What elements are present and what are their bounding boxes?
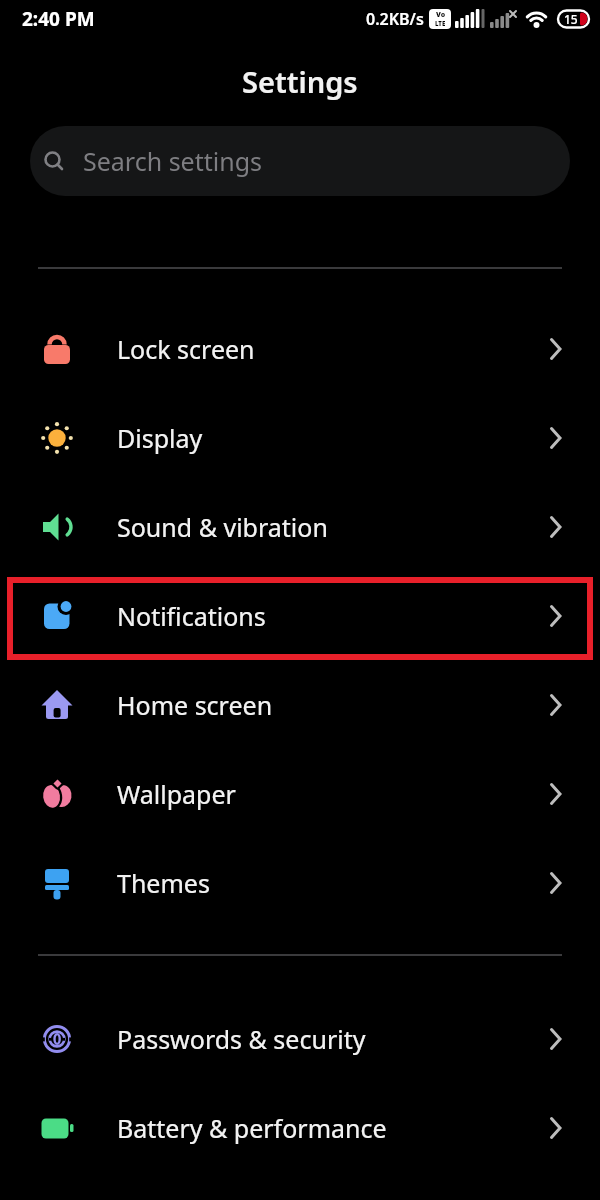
button[interactable]: Notifications — [0, 571, 600, 660]
button[interactable]: Lock screen — [0, 304, 600, 393]
button[interactable]: Themes — [0, 838, 600, 927]
staticText: Battery & performance — [117, 1111, 550, 1145]
staticText: 2:40 PM — [22, 6, 95, 32]
staticText: 15 — [564, 11, 578, 27]
staticText: Settings — [242, 62, 358, 101]
button[interactable]: Display — [0, 393, 600, 482]
button[interactable]: Home screen — [0, 660, 600, 749]
staticText: 0.2KB/s — [366, 8, 424, 30]
button[interactable]: Wallpaper — [0, 749, 600, 838]
staticText: Passwords & security — [117, 1022, 550, 1056]
staticText: Notifications — [117, 599, 550, 633]
staticText: Vo — [436, 10, 446, 20]
staticText: Home screen — [117, 688, 550, 722]
staticText: LTE — [435, 20, 446, 28]
button[interactable]: Sound & vibration — [0, 482, 600, 571]
button[interactable]: Battery & performance — [0, 1083, 600, 1172]
staticText: Wallpaper — [117, 777, 550, 811]
staticText: Sound & vibration — [117, 510, 550, 544]
button[interactable]: Passwords & security — [0, 994, 600, 1083]
button[interactable]: Search settings — [30, 126, 570, 196]
staticText: Themes — [117, 866, 550, 900]
staticText: Display — [117, 421, 550, 455]
staticText: Lock screen — [117, 332, 550, 366]
staticText: Search settings — [83, 144, 263, 178]
